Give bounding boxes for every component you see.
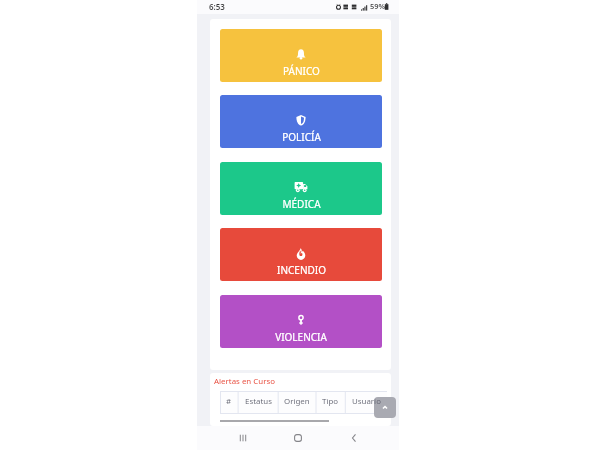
staticText: Estatus <box>245 396 272 407</box>
staticText: MÉDICA <box>282 197 321 211</box>
staticText: POLICÍA <box>282 130 321 144</box>
staticText: 59% <box>370 1 386 11</box>
button[interactable]: INCENDIO <box>220 228 382 281</box>
button[interactable]: VIOLENCIA <box>220 295 382 348</box>
staticText: INCENDIO <box>277 263 326 277</box>
staticText: Usuario <box>352 396 381 407</box>
button[interactable]: Scroll to top <box>374 397 396 418</box>
staticText: # <box>226 396 232 407</box>
staticText: PÁNICO <box>283 64 320 78</box>
button[interactable]: POLICÍA <box>220 95 382 148</box>
staticText: 6:53 <box>209 1 225 12</box>
staticText: Alertas en Curso <box>214 376 275 387</box>
button[interactable]: Home <box>287 426 309 450</box>
staticText: Origen <box>284 396 310 407</box>
staticText: VIOLENCIA <box>275 330 327 344</box>
staticText: Tipo <box>322 396 339 407</box>
button[interactable]: PÁNICO <box>220 29 382 82</box>
button[interactable]: Recents <box>232 426 254 450</box>
button[interactable]: Back <box>343 426 365 450</box>
button[interactable]: MÉDICA <box>220 162 382 215</box>
